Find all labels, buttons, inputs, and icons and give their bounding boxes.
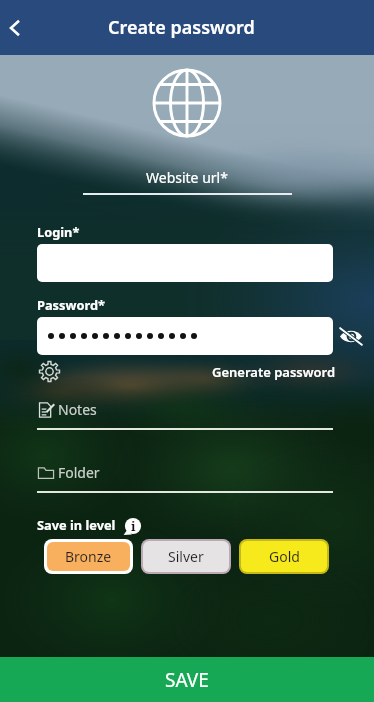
staticText: SAVE <box>165 667 209 693</box>
staticText: Bronze <box>65 547 112 566</box>
staticText: Folder <box>58 463 100 482</box>
button[interactable]: Silver <box>143 541 229 572</box>
button[interactable]: Bronze <box>47 542 130 571</box>
staticText: Password* <box>37 296 105 313</box>
button[interactable]: Gold <box>241 541 327 572</box>
button[interactable] <box>37 317 333 355</box>
button[interactable]: SAVE <box>0 657 374 702</box>
staticText: Login* <box>37 223 80 240</box>
staticText: Silver <box>168 547 204 566</box>
button[interactable]: Password options <box>36 358 62 384</box>
button[interactable]: Generate password <box>212 363 336 381</box>
staticText: Create password <box>108 15 255 40</box>
button[interactable] <box>37 244 333 282</box>
button[interactable]: Show password <box>336 322 364 350</box>
staticText: Gold <box>269 547 300 566</box>
staticText: Website url* <box>146 168 228 187</box>
button[interactable]: Info <box>123 516 142 535</box>
button[interactable]: Back <box>0 11 32 45</box>
staticText: i <box>131 517 136 535</box>
button[interactable]: Notes <box>37 400 333 419</box>
staticText: Notes <box>58 400 97 419</box>
staticText: Save in level <box>37 516 116 533</box>
button[interactable]: Folder <box>37 463 333 482</box>
